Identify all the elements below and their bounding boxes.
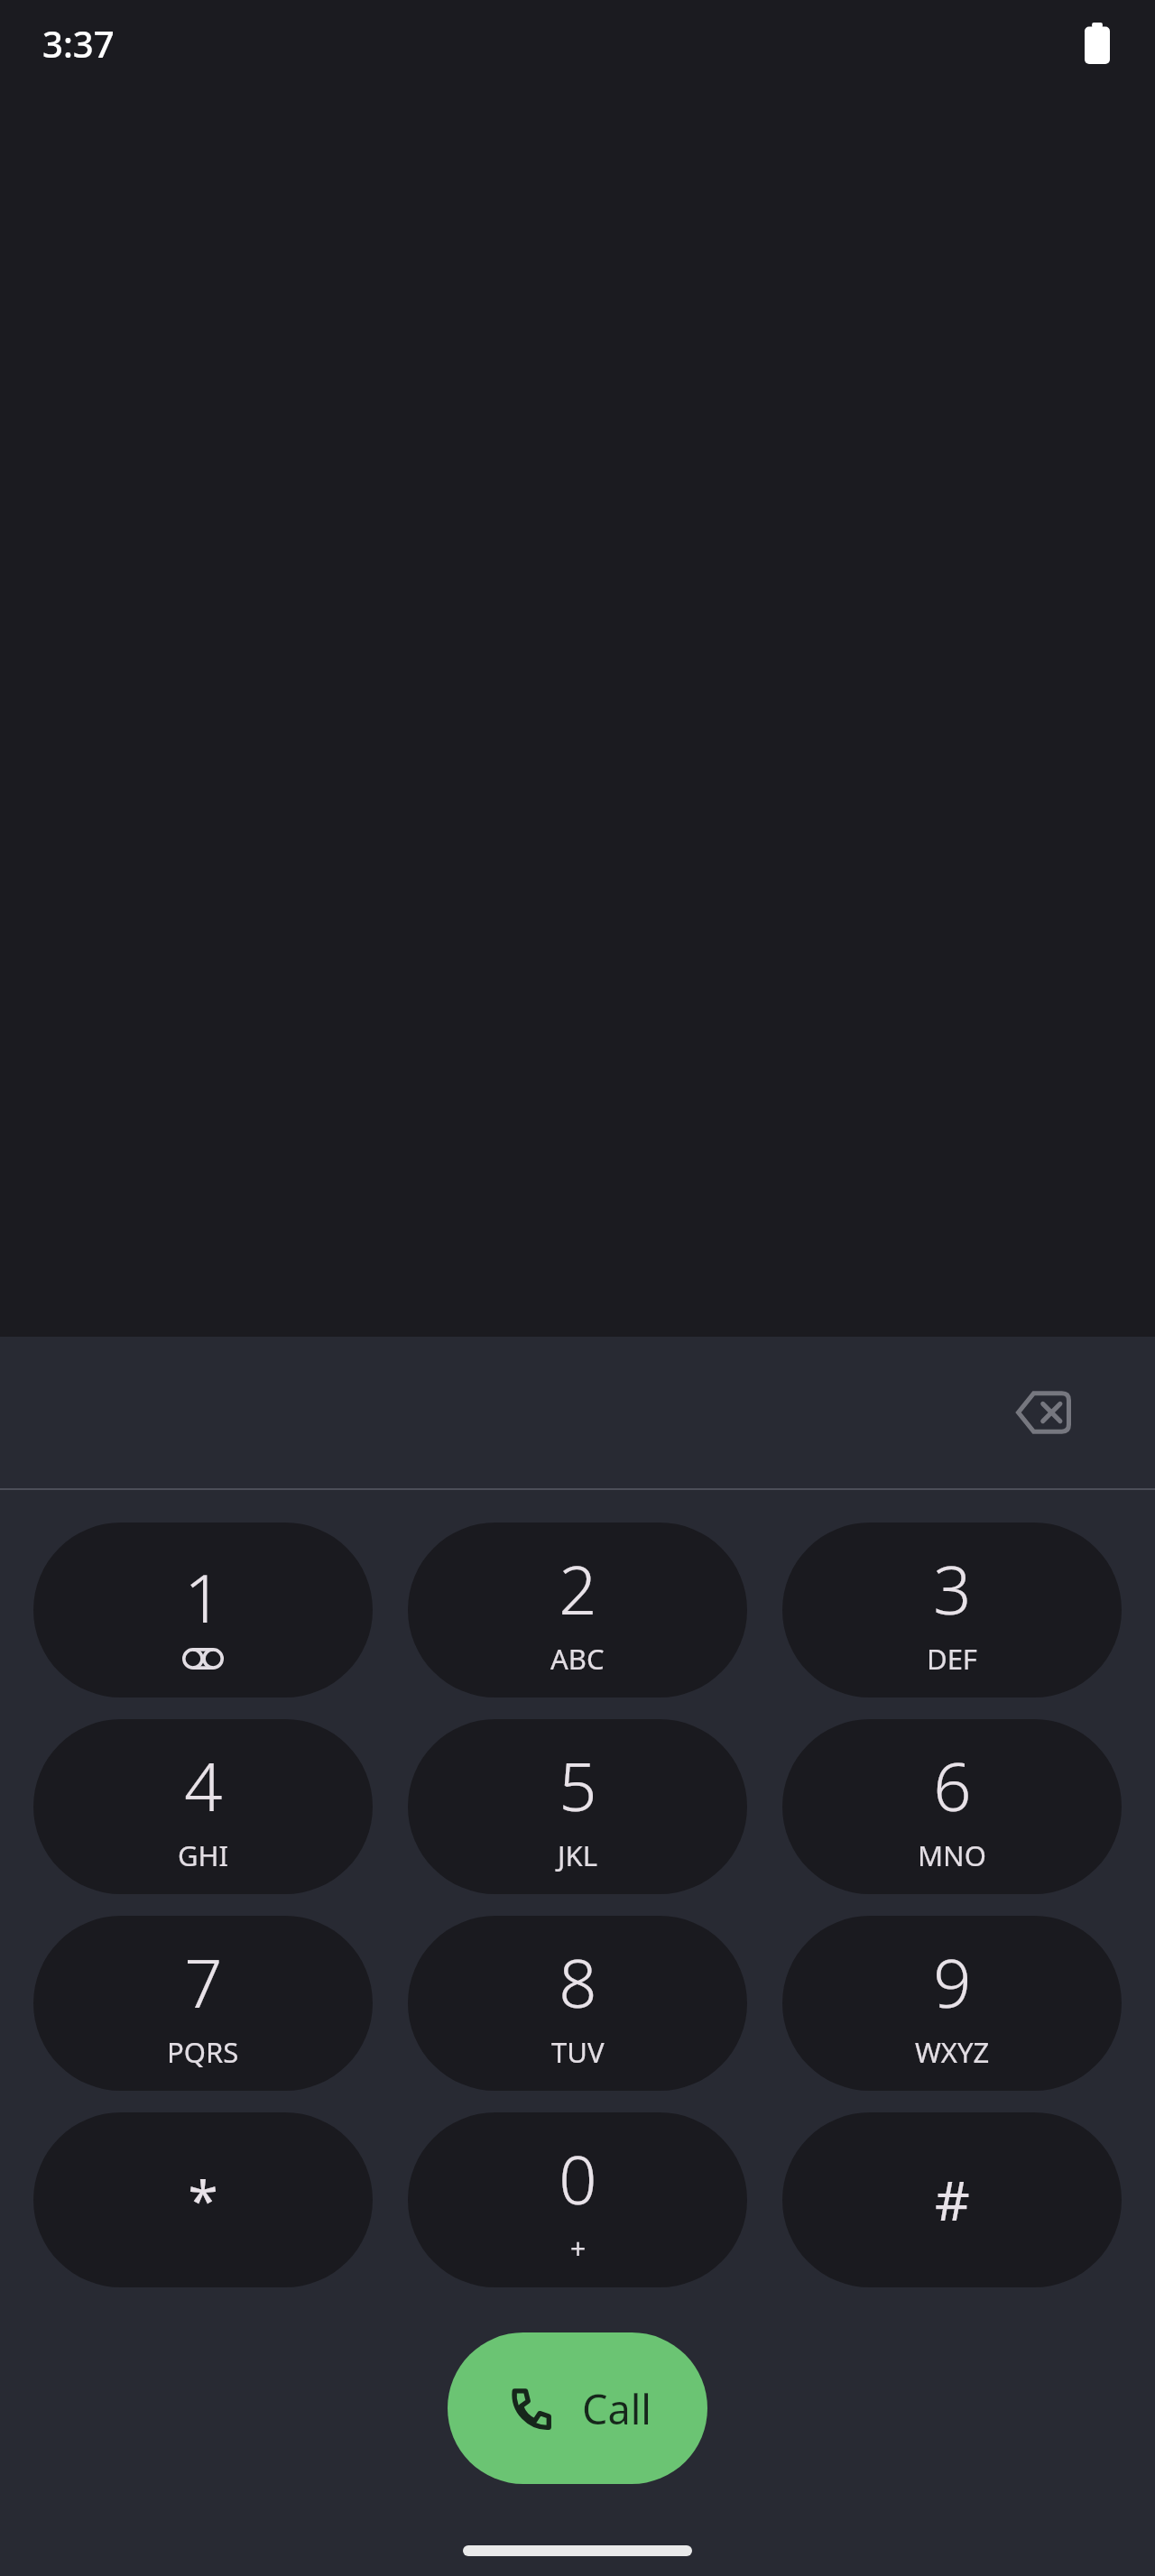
- staticText: WXYZ: [915, 2033, 990, 2071]
- staticText: Call: [582, 2381, 651, 2436]
- button[interactable]: 5: [408, 1719, 747, 1894]
- staticText: 6: [933, 1740, 972, 1831]
- staticText: PQRS: [167, 2033, 239, 2071]
- button[interactable]: 9: [782, 1916, 1122, 2091]
- staticText: 8: [559, 1937, 597, 2028]
- staticText: ABC: [550, 1640, 605, 1678]
- staticText: 3: [933, 1543, 972, 1634]
- staticText: 5: [559, 1740, 597, 1831]
- staticText: 3:37: [42, 19, 115, 68]
- button[interactable]: 6: [782, 1719, 1122, 1894]
- staticText: +: [570, 2230, 587, 2267]
- staticText: #: [935, 2163, 970, 2237]
- staticText: 7: [184, 1937, 223, 2028]
- button[interactable]: #: [782, 2112, 1122, 2287]
- button[interactable]: *: [33, 2112, 373, 2287]
- button[interactable]: 0: [408, 2112, 747, 2287]
- staticText: 1: [184, 1551, 223, 1642]
- button[interactable]: 4: [33, 1719, 373, 1894]
- staticText: 2: [559, 1543, 597, 1634]
- button[interactable]: Backspace: [998, 1367, 1088, 1458]
- button[interactable]: 1: [33, 1523, 373, 1697]
- staticText: MNO: [918, 1836, 986, 1874]
- button[interactable]: 2: [408, 1523, 747, 1697]
- staticText: 0: [559, 2133, 597, 2224]
- staticText: TUV: [551, 2033, 605, 2071]
- button[interactable]: 3: [782, 1523, 1122, 1697]
- button[interactable]: 7: [33, 1916, 373, 2091]
- button[interactable]: 8: [408, 1916, 747, 2091]
- staticText: DEF: [927, 1640, 977, 1678]
- staticText: 9: [933, 1937, 972, 2028]
- staticText: 4: [184, 1740, 223, 1831]
- staticText: *: [188, 2163, 218, 2237]
- staticText: GHI: [178, 1836, 229, 1874]
- button[interactable]: Call: [448, 2332, 707, 2484]
- staticText: JKL: [558, 1836, 597, 1874]
